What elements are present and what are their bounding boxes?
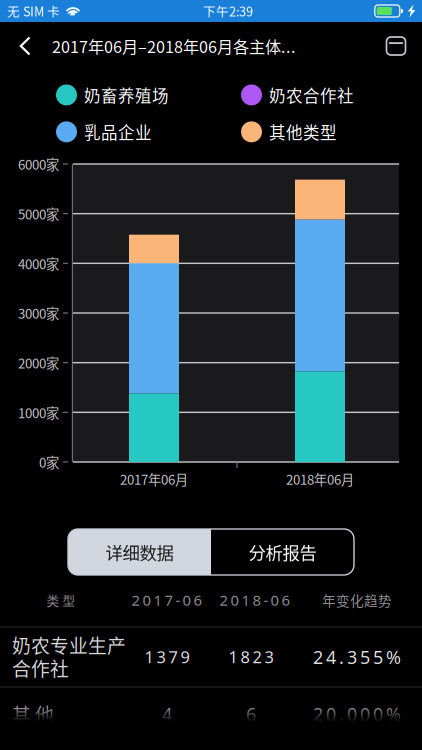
staticText: 6000家 <box>18 154 59 174</box>
staticText: 下午2:39 <box>203 2 253 20</box>
staticText: 详细数据 <box>105 539 173 565</box>
staticText: 2017年06月–2018年06月各主体... <box>52 34 296 58</box>
staticText: 1000家 <box>18 403 59 422</box>
staticText: 2 0 . 0 0 0 % <box>313 702 401 726</box>
staticText: 2017年06月 <box>120 469 188 488</box>
staticText: 奶畜养殖场 <box>84 83 169 107</box>
staticText: 奶农合作社 <box>269 83 354 107</box>
staticText: 0家 <box>39 452 59 472</box>
staticText: 其 他 <box>12 700 54 728</box>
button[interactable]: Table view <box>378 22 414 70</box>
staticText: 1 8 2 3 <box>228 646 273 668</box>
staticText: 2 0 1 7 - 0 6 <box>131 590 202 610</box>
staticText: 合作社 <box>12 654 69 682</box>
staticText: 5000家 <box>18 204 59 223</box>
staticText: 分析报告 <box>248 539 316 565</box>
staticText: 2 4 . 3 5 5 % <box>313 645 401 669</box>
staticText: 乳品企业 <box>84 120 152 144</box>
staticText: 2018年06月 <box>286 469 354 488</box>
staticText: 奶农专业生产 <box>12 631 126 659</box>
staticText: 2000家 <box>18 353 59 372</box>
staticText: 无 SIM 卡 <box>7 2 60 20</box>
button[interactable]: 分析报告 <box>211 529 354 575</box>
staticText: 类 型 <box>46 591 75 609</box>
button[interactable]: Back <box>7 22 43 70</box>
staticText: 6 <box>246 702 256 726</box>
staticText: 年变化趋势 <box>322 590 392 610</box>
staticText: 其他类型 <box>269 120 337 144</box>
button[interactable]: 详细数据 <box>68 529 211 575</box>
staticText: 2 0 1 8 - 0 6 <box>219 590 290 610</box>
staticText: 4 <box>162 702 172 726</box>
staticText: 4000家 <box>18 254 59 273</box>
staticText: 1 3 7 9 <box>144 646 189 668</box>
staticText: 3000家 <box>18 303 59 323</box>
